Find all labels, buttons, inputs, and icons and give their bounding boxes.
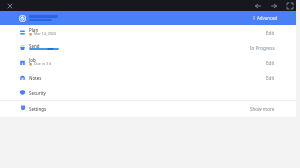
staticText: Mar 14, 2024 [34, 31, 56, 36]
button[interactable]: Plan [0, 25, 300, 40]
button[interactable]: Back [253, 1, 262, 10]
staticText: Due in 3 d [34, 61, 52, 66]
staticText: ● [29, 31, 34, 36]
staticText: In Progress [250, 45, 275, 51]
staticText: Job [29, 57, 36, 63]
button[interactable]: Send [0, 40, 300, 55]
staticText: Advanced [257, 15, 278, 21]
staticText: Edit [266, 30, 275, 36]
button[interactable]: Settings [0, 101, 300, 117]
staticText: Send [29, 43, 40, 49]
staticText: Security [29, 90, 46, 96]
staticText: Show more [250, 106, 275, 112]
button[interactable]: Close [5, 1, 14, 10]
staticText: Edit [266, 60, 275, 66]
button[interactable]: Advanced [250, 14, 280, 22]
staticText: Notes [29, 75, 42, 81]
button[interactable]: Full screen [285, 1, 294, 10]
staticText: Edit [266, 75, 275, 81]
button[interactable]: Security [0, 85, 300, 100]
staticText: ● [29, 61, 34, 66]
button[interactable]: Job [0, 55, 300, 70]
button[interactable]: Forward [269, 1, 278, 10]
button[interactable]: Notes [0, 70, 300, 85]
staticText: Plan [29, 27, 39, 33]
staticText: Settings [29, 106, 47, 112]
